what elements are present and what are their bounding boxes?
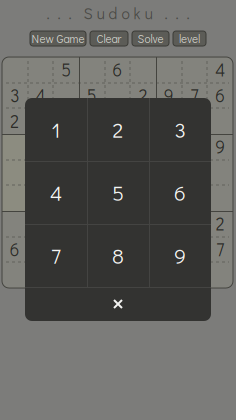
staticText: level — [179, 31, 200, 46]
button[interactable]: 1 — [25, 98, 87, 161]
button[interactable]: New Game — [30, 31, 86, 46]
button[interactable]: level — [173, 31, 206, 46]
staticText: 1 — [51, 115, 60, 143]
staticText: 2 — [112, 115, 123, 143]
button[interactable]: 8 — [87, 224, 149, 287]
staticText: 5 — [87, 84, 97, 107]
staticText: Clear — [96, 31, 121, 46]
button[interactable]: 9 — [149, 224, 211, 287]
staticText: 6 — [215, 84, 225, 107]
button[interactable]: 7 — [25, 224, 87, 287]
button[interactable]: Close — [25, 98, 211, 321]
staticText: 2 — [139, 84, 148, 107]
staticText: 3 — [10, 84, 19, 107]
staticText: 6 — [174, 178, 186, 206]
staticText: 8 — [112, 241, 124, 269]
staticText: 2 — [10, 110, 19, 132]
button[interactable]: 4 — [25, 161, 87, 224]
button[interactable]: 3 — [149, 98, 211, 161]
button[interactable]: Clear — [90, 31, 128, 46]
staticText: 9 — [215, 135, 225, 158]
staticText: 6 — [112, 58, 122, 81]
button[interactable]: 2 — [87, 98, 149, 161]
staticText: New Game — [31, 31, 84, 46]
staticText: 6 — [10, 238, 20, 261]
staticText: Solve — [137, 31, 163, 46]
staticText: 5 — [112, 178, 124, 206]
button[interactable]: 5 — [87, 161, 149, 224]
staticText: 4 — [50, 178, 62, 206]
staticText: 4 — [215, 58, 225, 81]
button[interactable]: Solve — [132, 31, 169, 46]
staticText: 2 — [216, 212, 225, 235]
staticText: . . . S u d o k u . . . — [46, 3, 189, 23]
staticText: 7 — [216, 238, 224, 261]
staticText: 4 — [35, 84, 45, 107]
staticText: 9 — [174, 241, 186, 269]
staticText: 9 — [164, 84, 174, 107]
staticText: 5 — [61, 58, 71, 81]
staticText: 3 — [174, 115, 185, 143]
button[interactable]: 6 — [149, 161, 211, 224]
staticText: 7 — [51, 241, 61, 269]
staticText: 7 — [190, 84, 198, 107]
